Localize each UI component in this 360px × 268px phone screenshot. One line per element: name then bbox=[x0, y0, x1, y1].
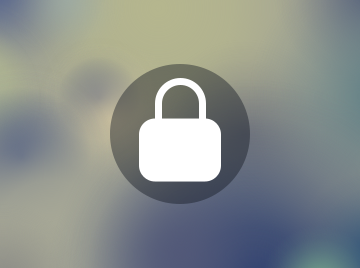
button[interactable]: Locked bbox=[110, 64, 250, 204]
